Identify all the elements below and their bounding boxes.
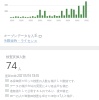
staticText: (※) 速報値として公表するものであり、後日修正。 — [5, 89, 72, 93]
staticText: 検査実施人数 — [6, 55, 26, 59]
staticText: (※) データの集計方法の変更により過去分を修正。 — [5, 84, 72, 88]
button[interactable]: 利用規約・ライセンス — [0, 39, 99, 43]
staticText: 更新日時 2021/5/16 18:35 — [5, 74, 40, 78]
button[interactable]: オープンデータを入手 — [0, 34, 99, 38]
staticText: 人 — [17, 66, 22, 71]
staticText: (※) 同一の人が複数回検査を受けた場合は1人と集計。 — [5, 94, 76, 98]
staticText: (※) 各保健所が行った検査の人数を集計した数値です。 — [5, 79, 77, 83]
staticText: オープンデータを入手 — [4, 34, 38, 38]
staticText: 74 — [6, 59, 17, 72]
staticText: 利用規約・ライセンス — [4, 39, 38, 43]
